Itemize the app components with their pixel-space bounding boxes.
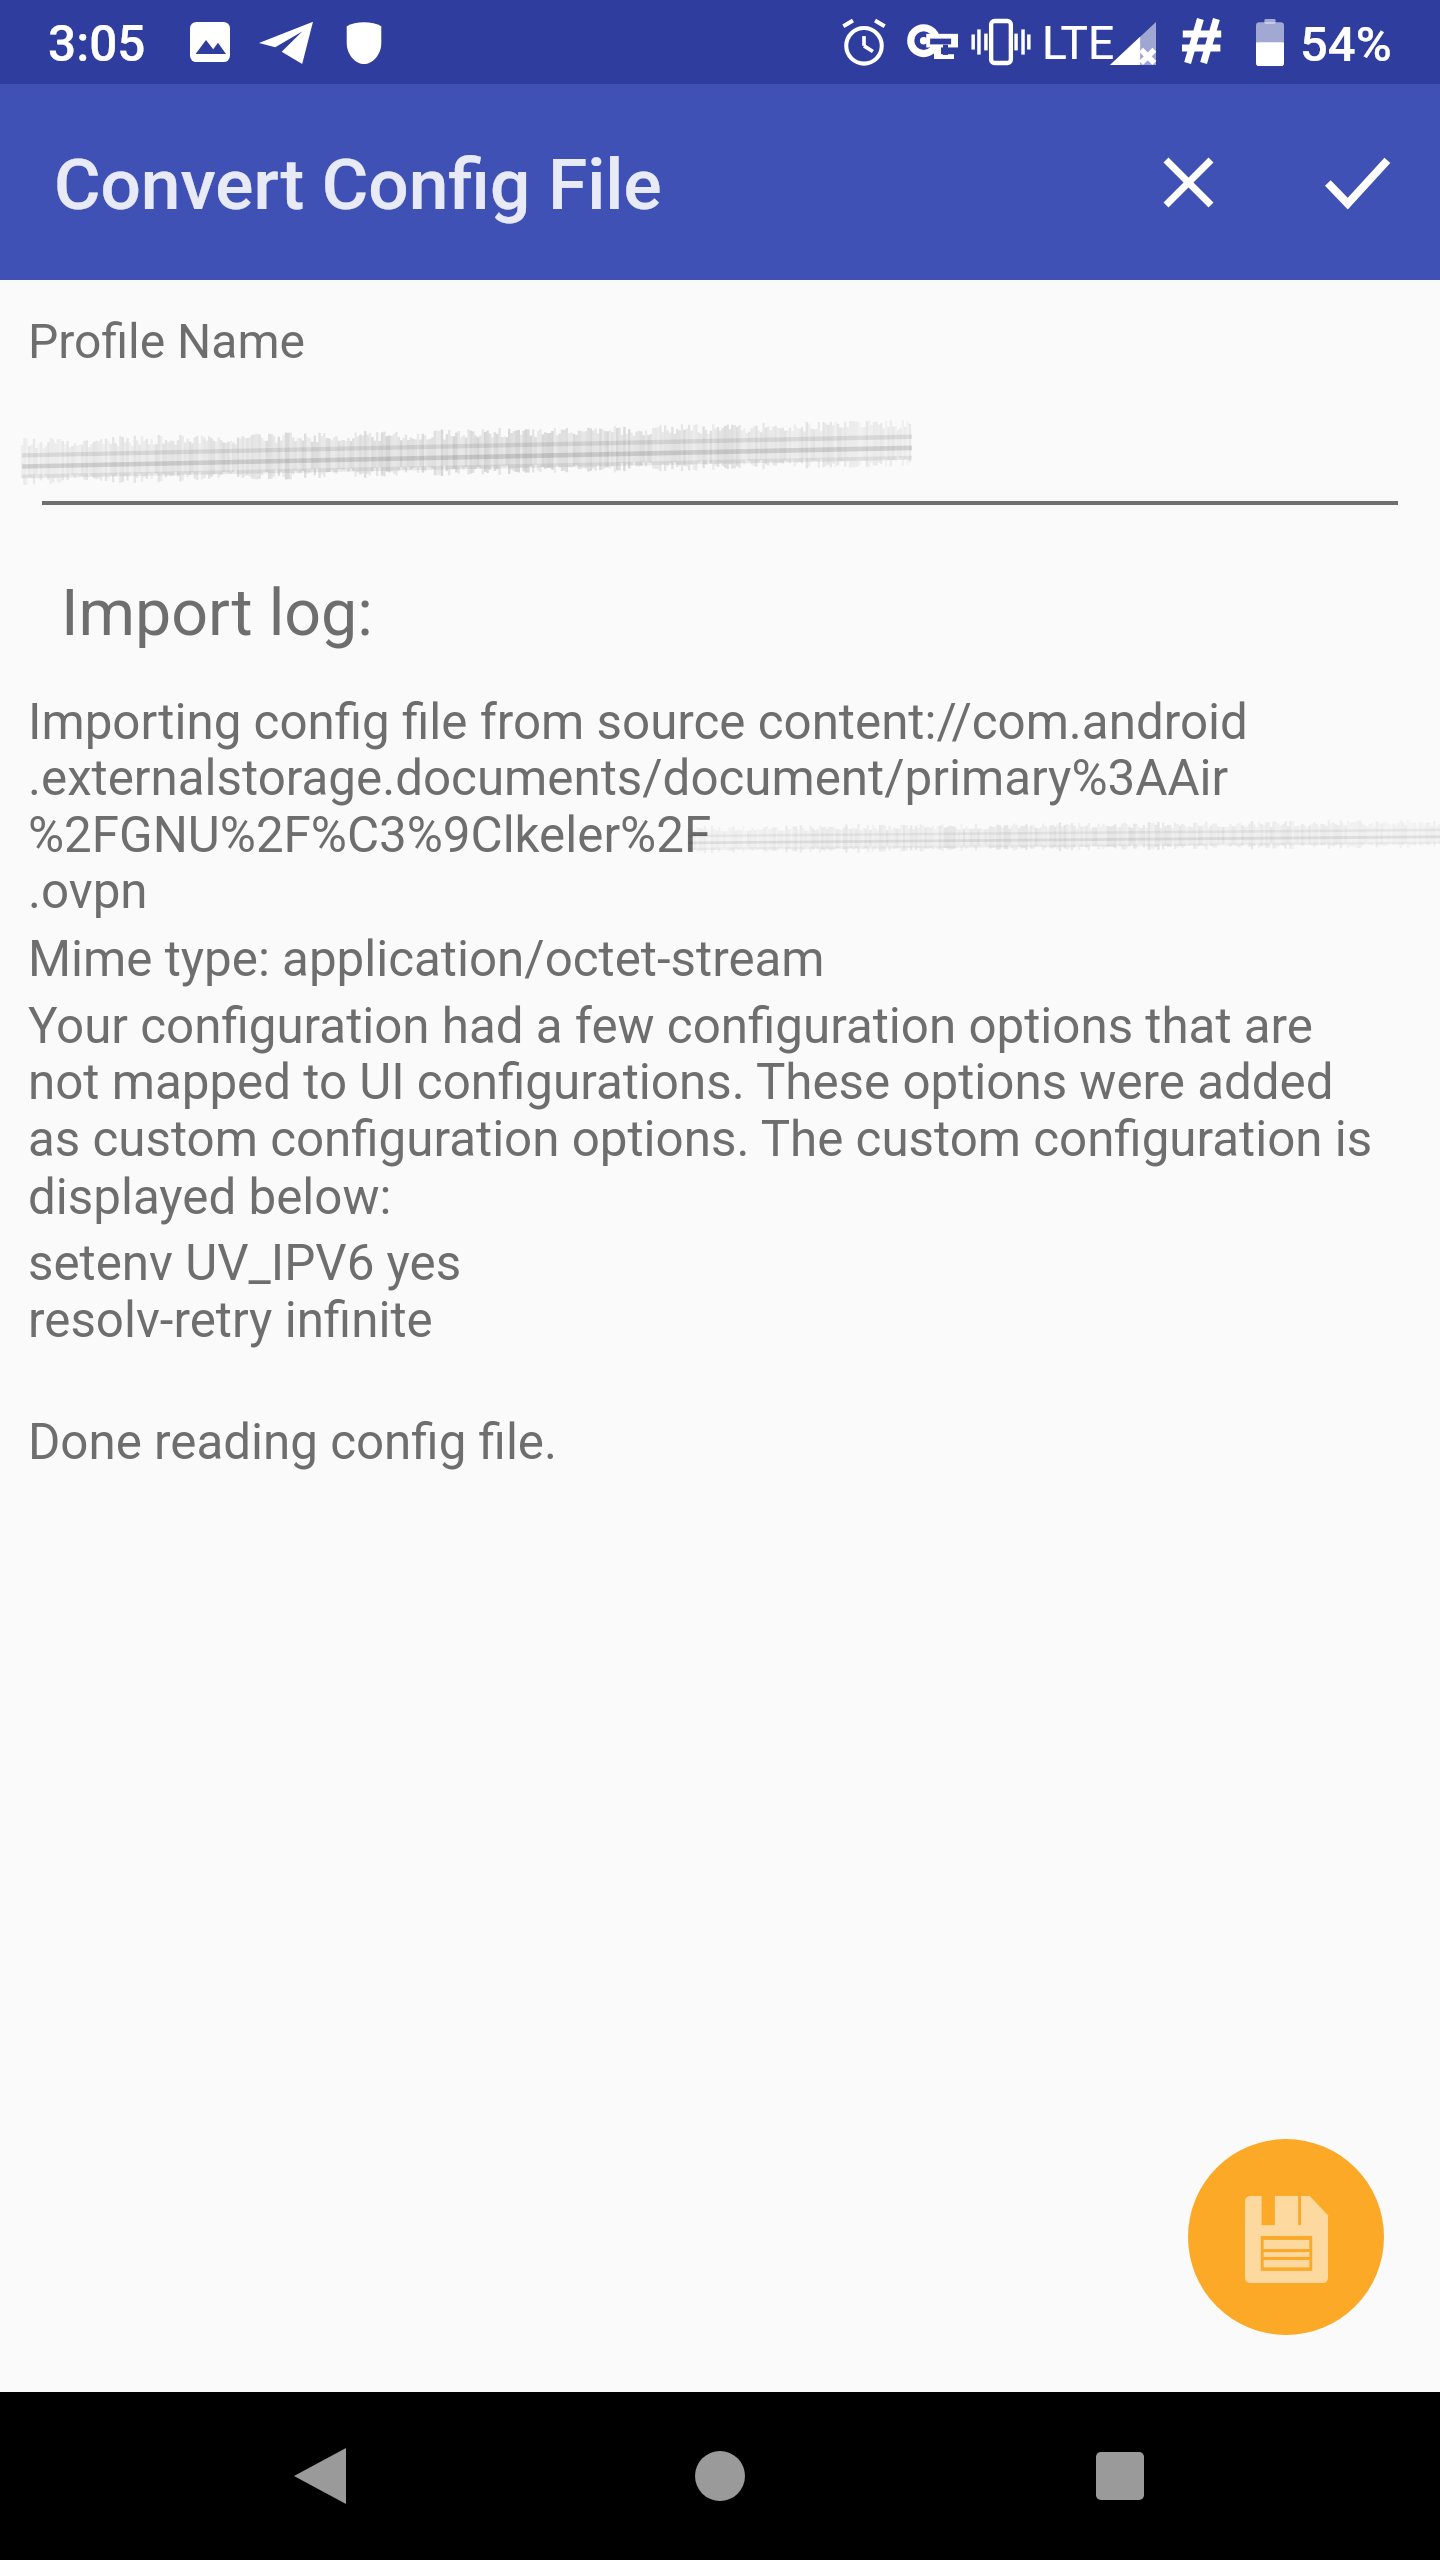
- staticText: .externalstorage.documents/document/prim…: [28, 749, 1229, 807]
- staticText: as custom configuration options. The cus…: [28, 1110, 1373, 1168]
- staticText: Done reading config file.: [28, 1413, 558, 1471]
- button[interactable]: Recent apps: [1050, 2406, 1190, 2546]
- staticText: .ovpn: [28, 862, 148, 920]
- staticText: Convert Config File: [54, 143, 662, 226]
- button[interactable]: Back: [250, 2406, 390, 2546]
- staticText: displayed below:: [28, 1168, 392, 1226]
- staticText: Importing config file from source conten…: [28, 693, 1248, 751]
- staticText: Your configuration had a few configurati…: [28, 997, 1313, 1055]
- staticText: Profile Name: [28, 313, 305, 369]
- button[interactable]: Cancel: [1104, 98, 1272, 266]
- button[interactable]: Home: [650, 2406, 790, 2546]
- staticText: setenv UV_IPV6 yes: [28, 1234, 462, 1292]
- staticText: 3:05: [48, 15, 146, 73]
- staticText: LTE: [1042, 16, 1115, 70]
- button[interactable]: Save: [1188, 2139, 1384, 2335]
- staticText: 54%: [1300, 16, 1392, 73]
- staticText: resolv-retry infinite: [28, 1291, 433, 1349]
- button[interactable]: Confirm: [1273, 98, 1440, 266]
- staticText: Import log:: [61, 575, 373, 651]
- staticText: Mime type: application/octet-stream: [28, 930, 825, 988]
- staticText: not mapped to UI configurations. These o…: [28, 1053, 1334, 1111]
- staticText: %2FGNU%2F%C3%9Clkeler%2F: [28, 806, 712, 864]
